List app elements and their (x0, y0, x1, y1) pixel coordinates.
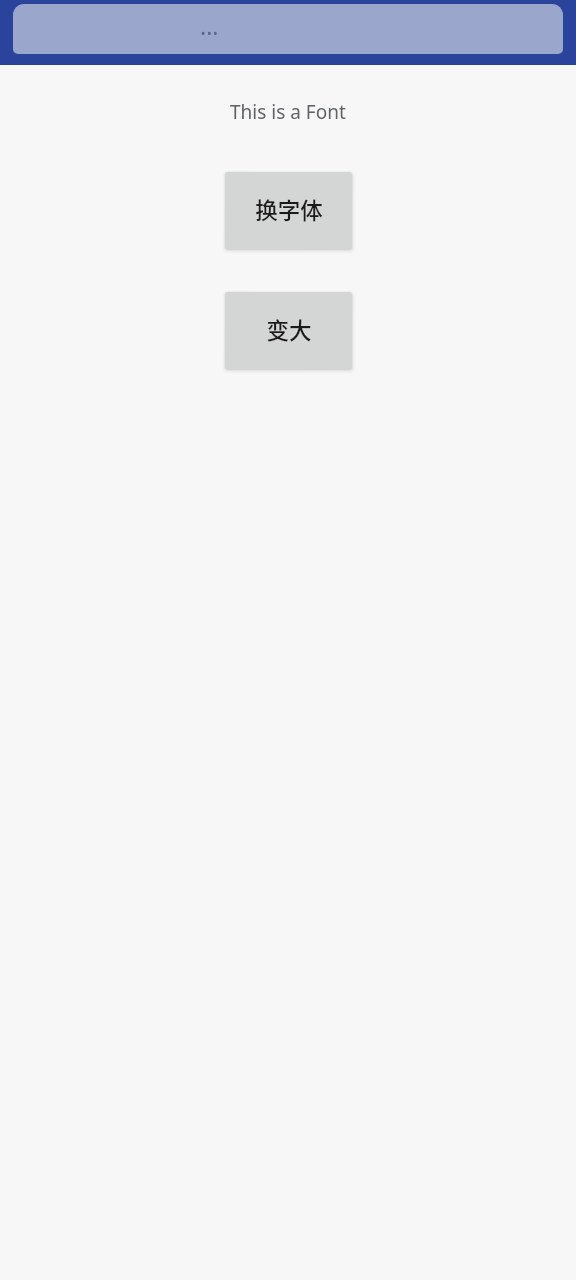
staticText: 换字体 (255, 193, 323, 226)
staticText: 变大 (266, 313, 312, 346)
button[interactable]: 换字体 (225, 172, 352, 249)
staticText: ... (200, 10, 219, 41)
button[interactable]: More options (13, 4, 563, 54)
button[interactable]: 变大 (225, 292, 352, 369)
staticText: This is a Font (230, 99, 346, 125)
